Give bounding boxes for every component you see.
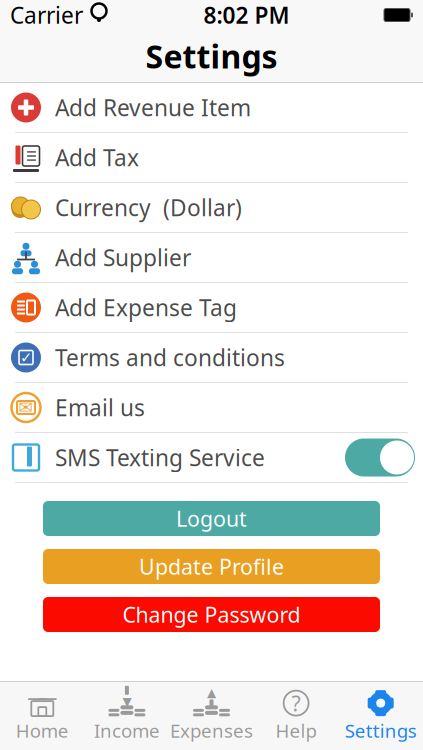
staticText: Update Profile <box>139 552 284 581</box>
button[interactable]: SMS Texting Service <box>0 433 423 483</box>
staticText: Email us <box>55 392 145 422</box>
button[interactable]: Change Password <box>43 597 380 632</box>
staticText: SMS Texting Service <box>55 442 265 472</box>
staticText: Income <box>94 718 160 743</box>
button[interactable]: Add Revenue Item <box>0 83 423 133</box>
button[interactable]: ✉ <box>0 383 423 433</box>
staticText: Carrier <box>10 0 83 30</box>
staticText: Add Expense Tag <box>55 292 237 322</box>
staticText: Currency (Dollar) <box>55 192 242 222</box>
staticText: ▲ <box>207 686 216 699</box>
staticText: Add Tax <box>55 142 139 172</box>
staticText: Terms and conditions <box>55 342 285 372</box>
button[interactable]: Add Tax <box>0 133 423 183</box>
staticText: ▼ <box>122 695 131 708</box>
button[interactable]: ▲ <box>169 685 254 747</box>
button[interactable]: ? <box>254 685 338 747</box>
button[interactable]: Home <box>0 685 85 747</box>
staticText: ✉ <box>18 398 33 417</box>
button[interactable]: Update Profile <box>43 549 380 584</box>
button[interactable]: Currency (Dollar) <box>0 183 423 233</box>
staticText: Add Supplier <box>55 242 191 272</box>
button[interactable]: Logout <box>43 501 380 536</box>
staticText: Logout <box>176 504 247 533</box>
button[interactable]: ▼ <box>85 685 169 747</box>
button[interactable]: Add Supplier <box>0 233 423 283</box>
staticText: Settings <box>345 718 417 743</box>
button[interactable]: Add Expense Tag <box>0 283 423 333</box>
staticText: Change Password <box>122 600 300 629</box>
staticText: Expenses <box>170 718 253 743</box>
staticText: Settings <box>145 35 277 77</box>
button[interactable]: Settings <box>338 685 423 747</box>
staticText: Help <box>276 718 317 743</box>
button[interactable]: ✓ <box>0 333 423 383</box>
staticText: 8:02 PM <box>203 0 289 30</box>
staticText: ✓ <box>20 349 32 366</box>
staticText: Home <box>16 718 69 743</box>
staticText: ? <box>292 689 301 717</box>
staticText: Add Revenue Item <box>55 92 251 122</box>
